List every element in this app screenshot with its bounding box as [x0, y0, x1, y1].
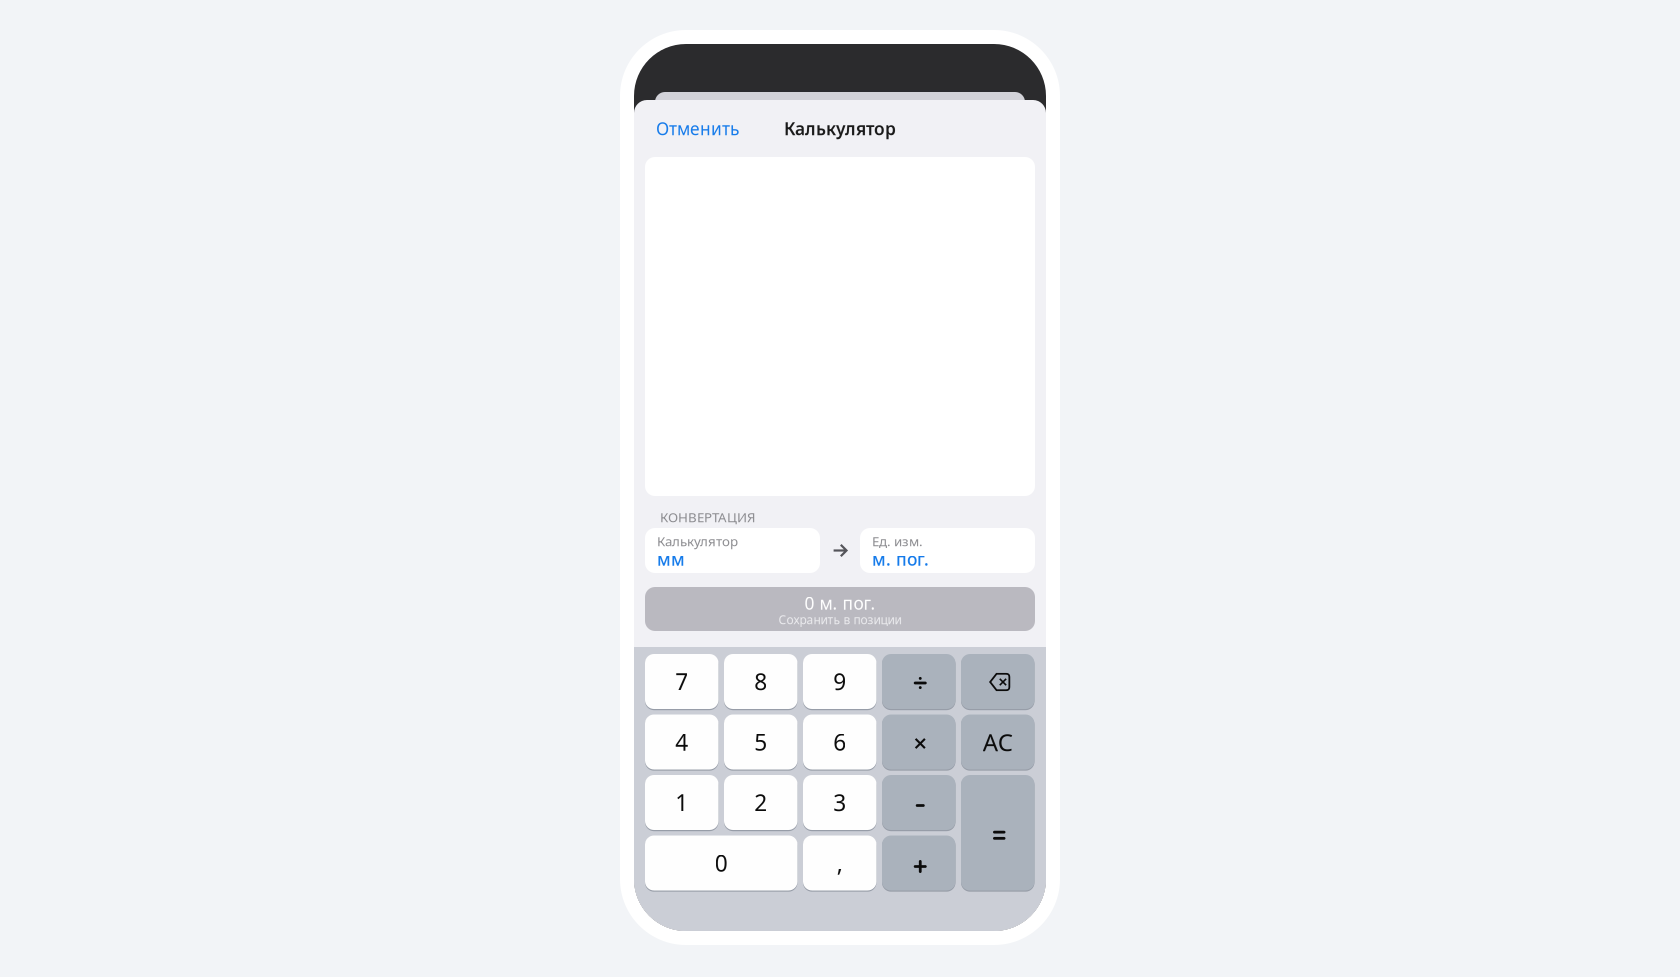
button[interactable]: Умножить: [882, 714, 955, 769]
button[interactable]: 7: [645, 654, 718, 709]
staticText: 7: [675, 666, 688, 696]
button[interactable]: 6: [803, 714, 876, 769]
staticText: мм: [657, 547, 685, 570]
button[interactable]: Отменить: [634, 106, 739, 150]
staticText: 0 м. пог.: [804, 591, 875, 614]
staticText: Отменить: [656, 117, 739, 140]
button[interactable]: Равно: [961, 775, 1034, 890]
staticText: КОНВЕРТАЦИЯ: [660, 508, 756, 526]
button[interactable]: 9: [803, 654, 876, 709]
button[interactable]: Ед. изм.: [860, 528, 1035, 573]
button[interactable]: Минус: [882, 775, 955, 830]
staticText: 4: [675, 727, 688, 757]
staticText: Калькулятор: [784, 117, 896, 140]
button[interactable]: 2: [724, 775, 797, 830]
button[interactable]: ,: [803, 835, 876, 890]
button[interactable]: Плюс: [882, 835, 955, 890]
staticText: 6: [833, 727, 846, 757]
button[interactable]: AC: [961, 714, 1034, 769]
staticText: ,: [837, 848, 843, 878]
staticText: Сохранить в позиции: [778, 611, 901, 627]
button[interactable]: Удалить: [961, 654, 1034, 709]
staticText: м. пог.: [872, 547, 929, 570]
staticText: Ед. изм.: [872, 532, 923, 550]
staticText: 3: [833, 787, 846, 817]
button[interactable]: Разделить: [882, 654, 955, 709]
button[interactable]: 4: [645, 714, 718, 769]
staticText: 1: [675, 787, 688, 817]
staticText: 2: [754, 787, 767, 817]
staticText: 5: [754, 727, 767, 757]
button[interactable]: 0 м. пог.: [645, 587, 1035, 631]
staticText: AC: [983, 726, 1013, 758]
button[interactable]: Калькулятор: [645, 528, 820, 573]
staticText: 8: [754, 666, 767, 696]
staticText: Калькулятор: [657, 532, 738, 550]
button[interactable]: 0: [645, 835, 797, 890]
staticText: 0: [715, 848, 728, 878]
button[interactable]: 8: [724, 654, 797, 709]
button[interactable]: 1: [645, 775, 718, 830]
staticText: 9: [833, 666, 846, 696]
button[interactable]: 5: [724, 714, 797, 769]
button[interactable]: 3: [803, 775, 876, 830]
